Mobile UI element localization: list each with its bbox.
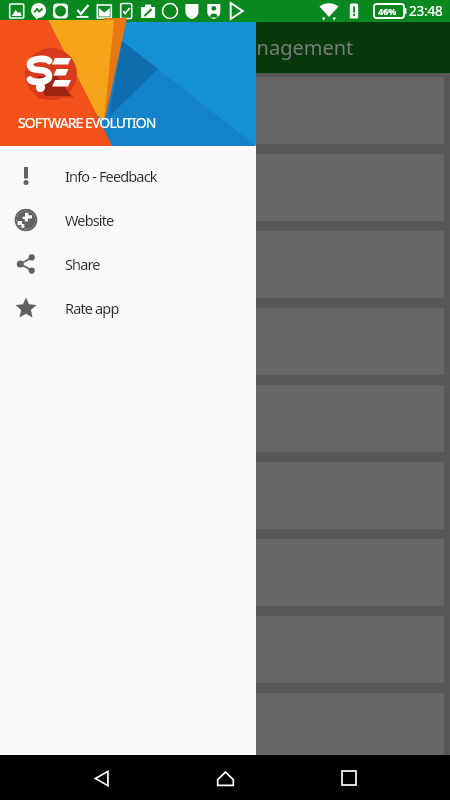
staticText: SOFTWARE EVOLUTION	[18, 113, 156, 132]
staticText: Rate app	[65, 298, 119, 318]
button[interactable]: Share	[0, 242, 256, 286]
button[interactable]: Info - Feedback	[0, 154, 256, 198]
staticText: Website	[65, 210, 114, 230]
staticText: Account Management	[146, 34, 354, 61]
button[interactable]: Recents	[327, 756, 371, 800]
button[interactable]: Back	[80, 756, 124, 800]
button[interactable]: Website	[0, 198, 256, 242]
staticText: 23:48	[409, 2, 443, 20]
staticText: Share	[65, 254, 100, 274]
button[interactable]: Home	[203, 756, 247, 800]
staticText: Info - Feedback	[65, 166, 157, 186]
staticText: 46%	[378, 5, 397, 17]
button[interactable]: Rate app	[0, 286, 256, 330]
